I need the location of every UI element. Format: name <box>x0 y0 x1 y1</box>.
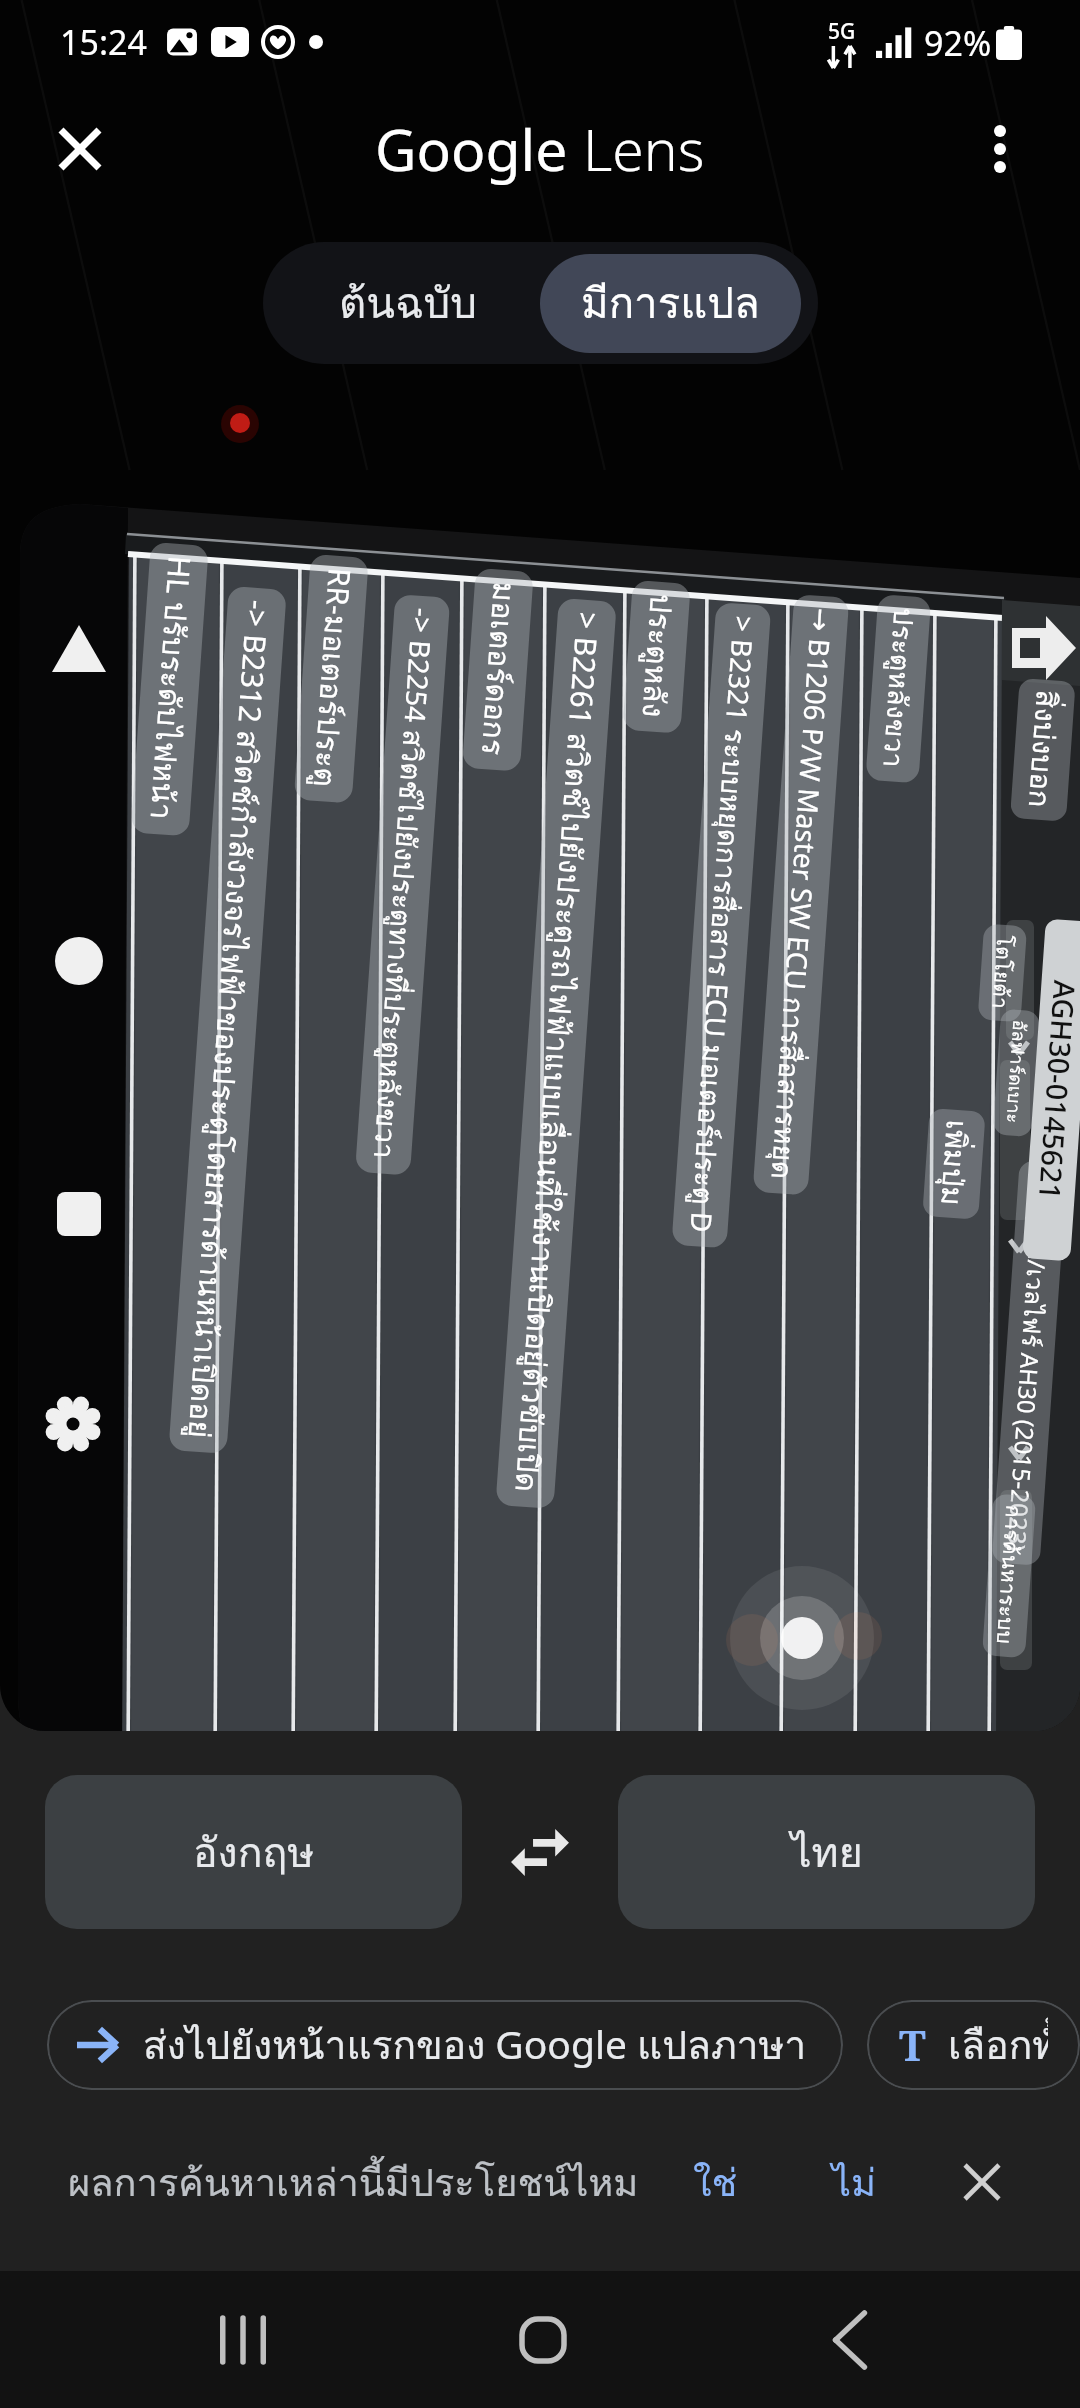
button[interactable]: ส่งไปยังหน้าแรกของ Google แปลภาษา <box>47 2000 843 2090</box>
staticText: ผลการค้นหาเหล่านี้มีประโยชน์ไหม <box>68 2152 639 2212</box>
staticText: Google <box>375 110 568 188</box>
button[interactable]: มีการแปล <box>540 254 801 353</box>
staticText: ส่งไปยังหน้าแรกของ Google แปลภาษา <box>143 2014 807 2076</box>
staticText: เลือกทั้งหมด <box>948 2014 1048 2076</box>
button[interactable]: Close <box>32 101 128 197</box>
staticText: ไทย <box>791 1820 863 1885</box>
staticText: ไม่ <box>832 2152 877 2212</box>
button[interactable]: Back <box>790 2271 910 2408</box>
button[interactable]: อังกฤษ <box>45 1775 462 1929</box>
button[interactable]: ใช่ <box>673 2138 758 2226</box>
staticText: มีการแปล <box>581 270 760 337</box>
button[interactable]: T <box>867 2000 1080 2090</box>
staticText: 92% <box>924 20 992 66</box>
button[interactable]: ต้นฉบับ <box>275 254 540 353</box>
staticText: อังกฤษ <box>193 1820 315 1885</box>
button[interactable]: Recents <box>183 2271 303 2408</box>
staticText: ต้นฉบับ <box>339 270 477 337</box>
staticText: 15:24 <box>60 19 147 65</box>
button[interactable]: ไทย <box>618 1775 1035 1929</box>
button[interactable]: ผลการค้นหาเหล่านี้มีประโยชน์ไหม <box>46 2138 661 2226</box>
staticText: T <box>899 2017 926 2073</box>
staticText: 5G <box>828 17 856 46</box>
button[interactable]: Home <box>483 2271 603 2408</box>
staticText: Lens <box>583 110 705 188</box>
button[interactable]: ไม่ <box>812 2138 897 2226</box>
button[interactable]: Swap languages <box>462 1775 618 1929</box>
staticText: ใช่ <box>693 2152 738 2212</box>
button[interactable]: Dismiss <box>946 2146 1018 2218</box>
button[interactable]: More options <box>952 101 1048 197</box>
